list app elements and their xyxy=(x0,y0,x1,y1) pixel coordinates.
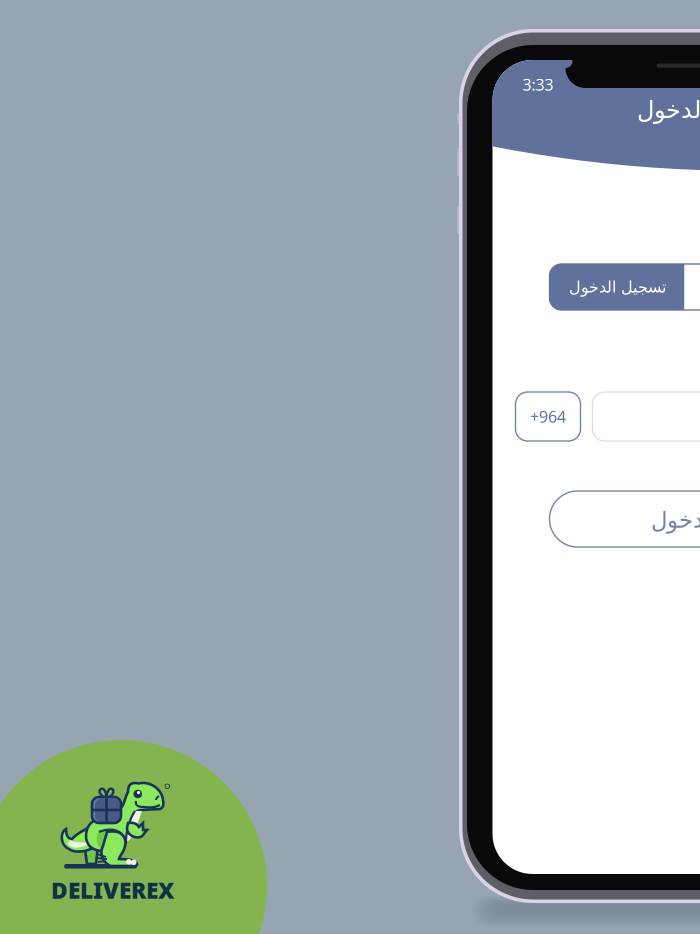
button[interactable]: تسجيل الدخول xyxy=(549,491,700,547)
staticText: DELIVEREX xyxy=(51,875,174,905)
button[interactable]: تسجيل الدخول xyxy=(549,264,684,310)
staticText: +964 xyxy=(530,406,566,427)
button[interactable]: حساب جديد xyxy=(684,264,700,310)
staticText: تسجيل الدخول xyxy=(568,278,665,296)
button[interactable]: +964 xyxy=(515,392,580,441)
staticText: تسجيل الدخول xyxy=(636,96,700,123)
staticText: تسجيل الدخول xyxy=(650,507,700,533)
staticText: 3:33 xyxy=(522,74,553,95)
